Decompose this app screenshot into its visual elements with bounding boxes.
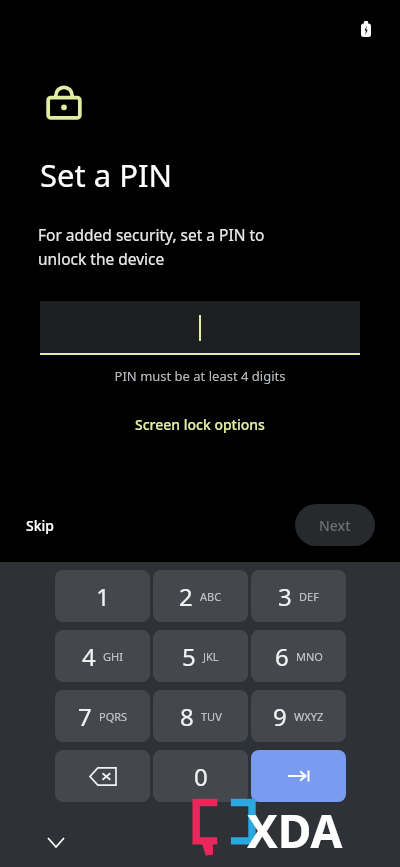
staticText: Screen lock options bbox=[135, 415, 265, 434]
staticText: DEF bbox=[299, 589, 319, 604]
staticText: PQRS bbox=[99, 709, 128, 724]
button[interactable]: 8 bbox=[153, 690, 248, 742]
button[interactable]: Backspace bbox=[55, 750, 150, 802]
button[interactable]: 3 bbox=[251, 570, 346, 622]
button[interactable] bbox=[40, 301, 360, 355]
staticText: 1 bbox=[96, 580, 110, 613]
staticText: WXYZ bbox=[294, 709, 324, 724]
button[interactable]: 5 bbox=[153, 630, 248, 682]
staticText: 2 bbox=[179, 580, 193, 613]
button[interactable]: Screen lock options bbox=[125, 411, 275, 438]
staticText: JKL bbox=[203, 649, 219, 664]
button[interactable]: Next bbox=[295, 504, 375, 546]
staticText: Next bbox=[319, 516, 351, 535]
button[interactable]: 0 bbox=[153, 750, 248, 802]
staticText: 6 bbox=[275, 640, 289, 673]
button[interactable]: Skip bbox=[14, 508, 66, 543]
staticText: TUV bbox=[201, 709, 222, 724]
staticText: For added security, set a PIN to unlock … bbox=[38, 224, 265, 269]
other: Battery charging bbox=[361, 21, 371, 37]
button[interactable]: 1 bbox=[55, 570, 150, 622]
staticText: 8 bbox=[180, 700, 194, 733]
staticText: 9 bbox=[273, 700, 287, 733]
button[interactable]: Hide keyboard bbox=[38, 824, 74, 860]
staticText: XDA bbox=[247, 799, 343, 862]
staticText: 7 bbox=[78, 700, 92, 733]
staticText: 4 bbox=[82, 640, 96, 673]
staticText: 3 bbox=[278, 580, 292, 613]
staticText: Skip bbox=[26, 516, 54, 535]
staticText: ABC bbox=[200, 589, 222, 604]
button[interactable]: 4 bbox=[55, 630, 150, 682]
staticText: 0 bbox=[194, 760, 208, 793]
button[interactable]: Next field bbox=[251, 750, 346, 802]
staticText: 5 bbox=[182, 640, 196, 673]
staticText: Set a PIN bbox=[40, 154, 173, 196]
button[interactable]: 2 bbox=[153, 570, 248, 622]
button[interactable]: 6 bbox=[251, 630, 346, 682]
staticText: PIN must be at least 4 digits bbox=[0, 367, 400, 385]
button[interactable]: 9 bbox=[251, 690, 346, 742]
staticText: GHI bbox=[103, 649, 123, 664]
button[interactable]: 7 bbox=[55, 690, 150, 742]
staticText: MNO bbox=[296, 649, 323, 664]
